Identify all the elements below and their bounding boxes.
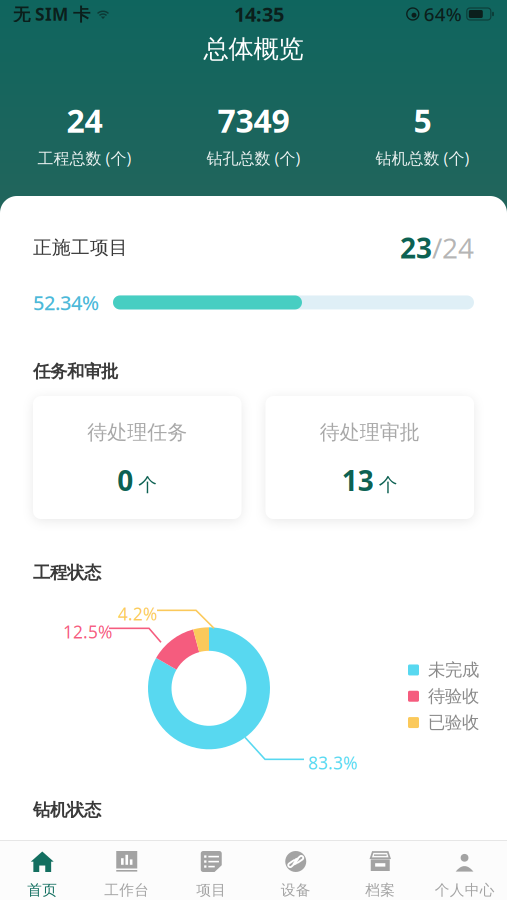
staticText: 已验收 xyxy=(428,712,479,733)
staticText: 待处理任务 xyxy=(87,420,187,445)
staticText: 24 xyxy=(66,99,102,141)
staticText: 待验收 xyxy=(428,686,479,707)
staticText: 总体概览 xyxy=(203,33,303,64)
staticText: 工程总数 (个) xyxy=(37,147,131,169)
staticText: 钻机状态 xyxy=(33,799,101,821)
staticText: 0 xyxy=(117,462,133,499)
button[interactable]: 档案 xyxy=(338,841,422,900)
staticText: 钻孔总数 (个) xyxy=(206,147,300,169)
button[interactable]: 工作台 xyxy=(84,841,169,900)
staticText: 12.5% xyxy=(63,620,112,643)
staticText: 首页 xyxy=(27,881,57,899)
staticText: 52.34% xyxy=(33,289,99,316)
button[interactable]: 待处理审批 xyxy=(265,396,474,519)
staticText: 14:35 xyxy=(234,1,284,27)
staticText: 档案 xyxy=(365,881,395,899)
staticText: 工程状态 xyxy=(33,562,101,583)
staticText: 待处理审批 xyxy=(320,420,420,445)
staticText: 未完成 xyxy=(428,659,479,681)
staticText: 钻机总数 (个) xyxy=(375,147,469,169)
staticText: 工作台 xyxy=(104,881,149,899)
staticText: 个 xyxy=(138,473,157,496)
button[interactable]: 首页 xyxy=(0,841,84,900)
staticText: /24 xyxy=(432,229,474,266)
staticText: 设备 xyxy=(281,881,311,899)
button[interactable]: 项目 xyxy=(169,841,253,900)
staticText: 13 xyxy=(342,462,374,499)
staticText: 4.2% xyxy=(118,602,157,625)
button[interactable]: 设备 xyxy=(253,841,338,900)
button[interactable]: 待处理任务 xyxy=(33,396,241,519)
staticText: 正施工项目 xyxy=(33,236,128,259)
staticText: 个人中心 xyxy=(435,881,495,899)
staticText: 7349 xyxy=(217,99,289,141)
staticText: 个 xyxy=(379,473,398,496)
staticText: 23 xyxy=(400,229,432,266)
staticText: 5 xyxy=(413,99,431,141)
staticText: 83.3% xyxy=(308,751,357,774)
staticText: 项目 xyxy=(196,881,226,899)
staticText: 无 SIM 卡 xyxy=(13,2,90,25)
staticText: 任务和审批 xyxy=(33,361,118,382)
staticText: 64% xyxy=(424,2,462,26)
button[interactable]: 个人中心 xyxy=(422,841,507,900)
